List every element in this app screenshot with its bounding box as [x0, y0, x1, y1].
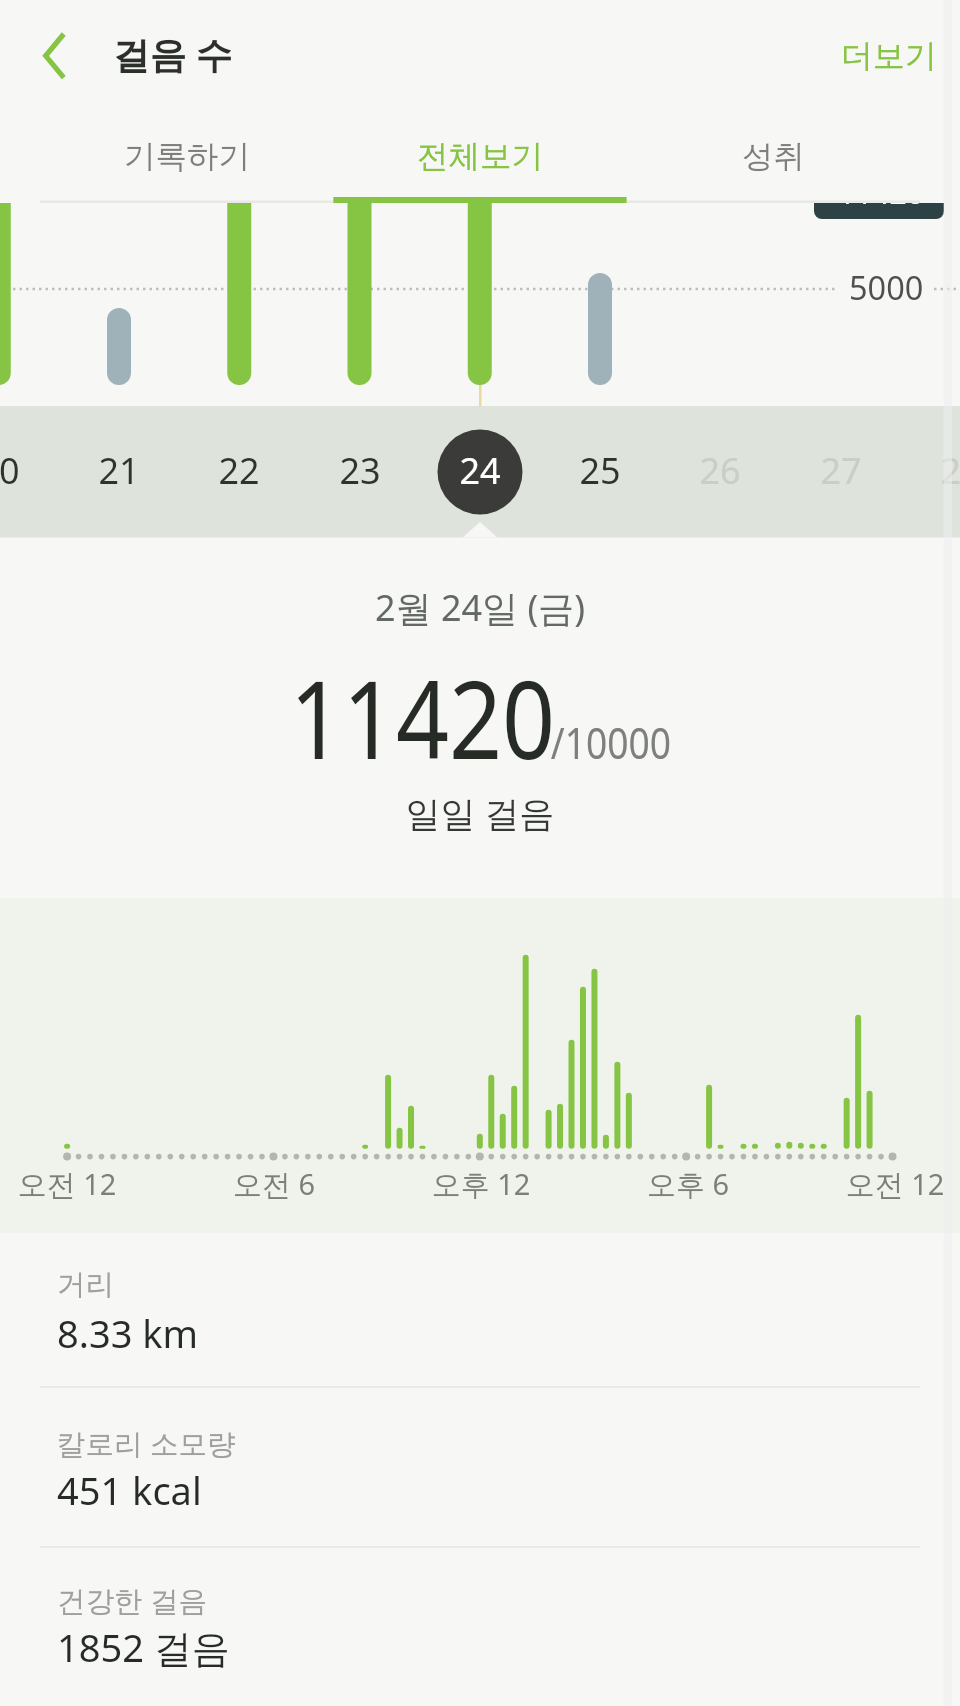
button[interactable]: 전체보기 [333, 112, 626, 202]
staticText: /10000 [551, 713, 671, 772]
staticText: 성취 [742, 137, 805, 177]
button[interactable]: 더보기 [824, 15, 954, 97]
button[interactable]: 칼로리 소모량 [0, 1424, 960, 1582]
staticText: 451 kcal [57, 1464, 202, 1516]
button[interactable]: 26 [660, 406, 780, 537]
staticText: 27 [781, 446, 901, 495]
staticText: 25 [540, 446, 660, 495]
staticText: 오전 6 [164, 1164, 384, 1204]
staticText: 11420 [290, 644, 555, 791]
staticText: 8.33 km [57, 1307, 199, 1359]
staticText: 칼로리 소모량 [57, 1424, 236, 1463]
staticText: 오전 12 [785, 1164, 960, 1204]
staticText: 5000 [849, 265, 924, 309]
staticText: 기록하기 [124, 137, 250, 177]
staticText: 24 [420, 446, 540, 495]
staticText: 건강한 걸음 [57, 1581, 207, 1620]
button[interactable]: 건강한 걸음 [0, 1581, 960, 1706]
staticText: 더보기 [841, 36, 937, 76]
staticText: 거리 [57, 1267, 114, 1303]
button[interactable]: 28 [901, 406, 960, 537]
button[interactable]: 22 [179, 406, 299, 537]
button[interactable]: 성취 [627, 112, 920, 202]
staticText: 오전 12 [0, 1164, 177, 1204]
button[interactable]: 기록하기 [40, 112, 333, 202]
staticText: 20 [0, 446, 59, 495]
staticText: 22 [179, 446, 299, 495]
staticText: 오후 12 [371, 1164, 591, 1204]
staticText: 28 [901, 446, 960, 495]
staticText: 전체보기 [417, 137, 543, 177]
staticText: 오후 6 [578, 1164, 798, 1204]
staticText: 11420 [838, 203, 924, 213]
button[interactable]: 거리 [0, 1267, 960, 1425]
staticText: 21 [59, 446, 179, 495]
button[interactable]: 24 [420, 406, 540, 537]
staticText: 23 [300, 446, 420, 495]
button[interactable]: 23 [300, 406, 420, 537]
staticText: 2월 24일 (금) [280, 583, 680, 632]
staticText: 1852 걸음 [57, 1621, 230, 1673]
button[interactable]: 25 [540, 406, 660, 537]
button[interactable]: 21 [59, 406, 179, 537]
staticText: 걸음 수 [113, 29, 232, 79]
button[interactable]: 20 [0, 406, 59, 537]
staticText: 26 [660, 446, 780, 495]
staticText: 일일 걸음 [280, 789, 680, 837]
button[interactable]: Back [14, 17, 94, 97]
